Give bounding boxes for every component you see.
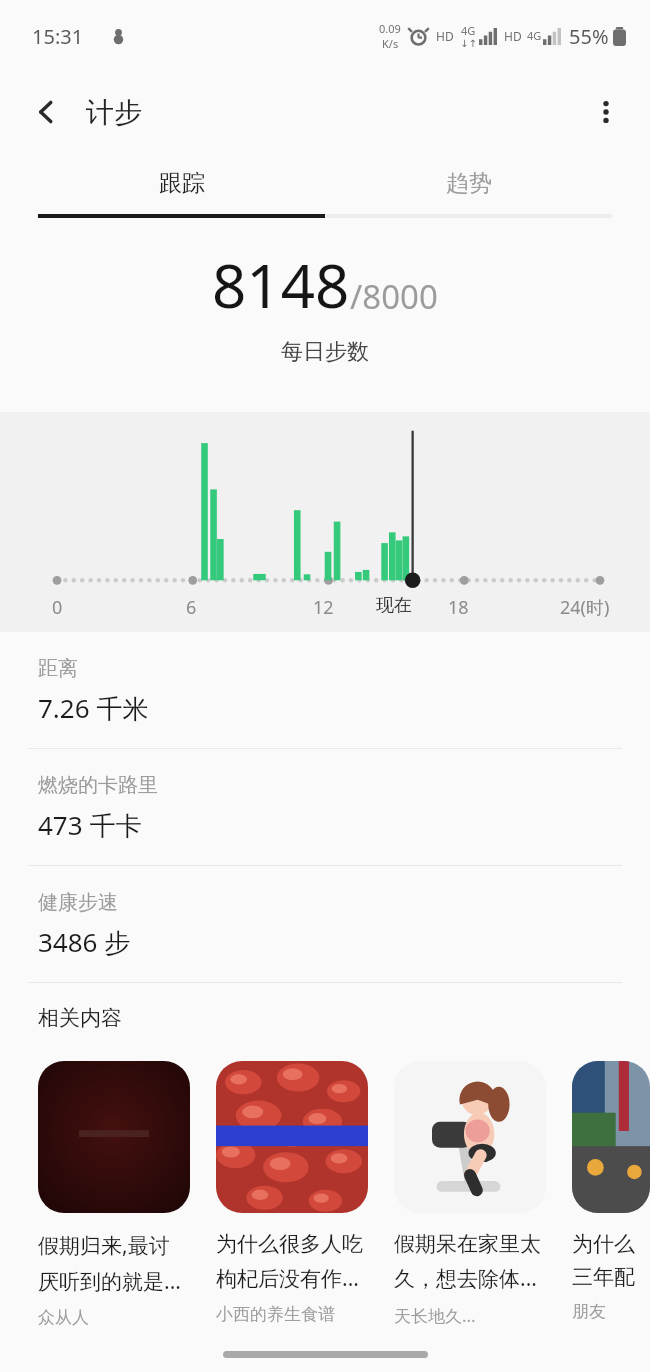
staticText: HD xyxy=(504,28,522,44)
staticText: 473 千卡 xyxy=(38,807,142,843)
staticText: 6 xyxy=(186,595,197,620)
staticText: 假期归来,最讨 xyxy=(38,1231,170,1260)
staticText: HD xyxy=(436,28,454,44)
staticText: 4G xyxy=(527,28,542,43)
staticText: K/s xyxy=(382,36,399,51)
staticText: 计步 xyxy=(86,95,142,130)
button[interactable]: 为什么有 xyxy=(572,1061,650,1322)
button[interactable]: 距离 xyxy=(0,632,650,748)
staticText: 健康步速 xyxy=(38,890,118,915)
staticText: 8148 xyxy=(212,244,350,326)
button[interactable]: 为什么很多人吃 xyxy=(216,1061,368,1325)
button[interactable]: 趋势 xyxy=(325,152,612,214)
button[interactable]: 假期呆在家里太 xyxy=(394,1061,546,1327)
staticText: 4G xyxy=(461,23,476,38)
staticText: 跟踪 xyxy=(159,169,205,198)
staticText: 三年配速 xyxy=(572,1264,650,1290)
staticText: 小西的养生食谱 xyxy=(216,1304,335,1325)
staticText: 15:31 xyxy=(32,23,84,50)
staticText: 假期呆在家里太 xyxy=(394,1231,541,1257)
staticText: 每日步数 xyxy=(0,338,650,366)
staticText: 久，想去除体... xyxy=(394,1264,537,1293)
staticText: 18 xyxy=(448,595,469,620)
staticText: 枸杞后没有作... xyxy=(216,1264,359,1293)
staticText: 为什么很多人吃 xyxy=(216,1231,363,1257)
staticText: 12 xyxy=(313,595,334,620)
button[interactable]: 跟踪 xyxy=(38,152,325,214)
staticText: 55% xyxy=(569,23,609,50)
staticText: 3486 步 xyxy=(38,924,131,960)
staticText: 天长地久... xyxy=(394,1304,476,1327)
staticText: 距离 xyxy=(38,656,78,681)
staticText: 0.09 xyxy=(379,21,401,36)
button[interactable]: 燃烧的卡路里 xyxy=(0,749,650,865)
button[interactable]: More options xyxy=(578,84,634,140)
staticText: 众从人 xyxy=(38,1307,89,1328)
staticText: ↓↑ xyxy=(460,38,477,50)
staticText: 相关内容 xyxy=(38,1005,122,1031)
button[interactable]: Back xyxy=(18,84,74,140)
staticText: 为什么有 xyxy=(572,1231,650,1257)
button[interactable]: 健康步速 xyxy=(0,866,650,982)
staticText: 燃烧的卡路里 xyxy=(38,773,158,798)
staticText: /8000 xyxy=(350,274,438,319)
staticText: 朋友 xyxy=(572,1301,606,1322)
staticText: 厌听到的就是... xyxy=(38,1267,181,1296)
button[interactable]: 假期归来,最讨 xyxy=(38,1061,190,1328)
staticText: 趋势 xyxy=(446,169,492,198)
staticText: 0 xyxy=(52,595,63,620)
staticText: 现在 xyxy=(376,594,412,617)
staticText: 24(时) xyxy=(560,595,610,620)
staticText: 7.26 千米 xyxy=(38,690,149,726)
